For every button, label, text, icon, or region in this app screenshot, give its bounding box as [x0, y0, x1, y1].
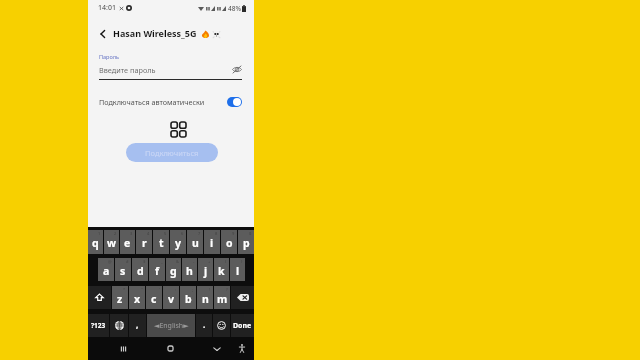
other: Emoji: [217, 321, 226, 330]
staticText: Подключиться: [145, 148, 199, 158]
button[interactable]: Show password: [231, 64, 242, 75]
button[interactable]: @: [98, 258, 114, 281]
staticText: k: [218, 264, 225, 278]
button[interactable]: !: [197, 286, 213, 309]
staticText: Hasan Wireless_5G: [113, 27, 197, 39]
staticText: 4: [147, 231, 150, 236]
staticText: q: [92, 236, 99, 250]
button[interactable]: ': [146, 286, 162, 309]
staticText: ": [141, 287, 143, 292]
button[interactable]: ): [230, 258, 245, 281]
staticText: a: [103, 264, 110, 278]
staticText: (: [225, 259, 227, 264]
staticText: 6: [181, 231, 184, 236]
button[interactable]: *: [112, 286, 128, 309]
staticText: Введите пароль: [99, 65, 156, 75]
staticText: ?: [226, 287, 228, 292]
button[interactable]: 0: [238, 230, 254, 254]
staticText: 0: [249, 231, 252, 236]
staticText: l: [236, 264, 240, 278]
staticText: c: [151, 292, 157, 306]
button[interactable]: _: [149, 258, 165, 281]
staticText: 3: [130, 231, 133, 236]
button[interactable]: Accessibility: [232, 337, 252, 360]
button[interactable]: Scan QR code: [169, 120, 187, 138]
staticText: @: [108, 259, 112, 264]
button[interactable]: :: [163, 286, 179, 309]
staticText: z: [117, 292, 123, 306]
button[interactable]: ;: [180, 286, 196, 309]
button[interactable]: ◄English►: [147, 314, 195, 337]
staticText: .: [203, 319, 206, 330]
staticText: g: [170, 264, 177, 278]
button[interactable]: (: [214, 258, 229, 281]
button[interactable]: Done: [231, 314, 254, 337]
button[interactable]: Recents: [112, 337, 134, 360]
staticText: v: [168, 292, 174, 306]
staticText: n: [202, 292, 209, 306]
button[interactable]: Backspace: [231, 286, 254, 309]
staticText: Подключаться автоматически: [99, 97, 205, 107]
button[interactable]: Emoji: [213, 314, 230, 337]
staticText: j: [204, 264, 208, 278]
staticText: t: [159, 236, 164, 250]
button[interactable]: 4: [136, 230, 152, 254]
button[interactable]: 5: [153, 230, 169, 254]
staticText: Done: [233, 321, 252, 331]
button[interactable]: 1: [88, 230, 103, 254]
staticText: e: [124, 236, 131, 250]
staticText: i: [210, 236, 214, 250]
staticText: u: [192, 236, 199, 250]
button[interactable]: Change language: [110, 314, 128, 337]
button[interactable]: #: [115, 258, 131, 281]
staticText: +: [208, 259, 211, 264]
staticText: 5: [164, 231, 167, 236]
button[interactable]: 6: [170, 230, 186, 254]
button[interactable]: Home: [159, 337, 181, 360]
other: Backspace: [237, 294, 249, 301]
other: Shift: [95, 293, 104, 302]
staticText: m: [217, 292, 228, 306]
staticText: o: [226, 236, 233, 250]
button[interactable]: 9: [221, 230, 237, 254]
staticText: 1: [98, 231, 101, 236]
staticText: !: [209, 287, 211, 292]
button[interactable]: &: [166, 258, 181, 281]
staticText: w: [107, 236, 116, 250]
button[interactable]: 3: [120, 230, 135, 254]
staticText: *: [123, 287, 126, 292]
button[interactable]: 7: [187, 230, 203, 254]
button[interactable]: ,: [129, 314, 146, 337]
staticText: 9: [232, 231, 235, 236]
staticText: b: [185, 292, 192, 306]
staticText: r: [142, 236, 147, 250]
staticText: y: [175, 236, 181, 250]
button[interactable]: -: [182, 258, 197, 281]
button[interactable]: 2: [104, 230, 119, 254]
staticText: 8: [215, 231, 218, 236]
staticText: h: [186, 264, 193, 278]
staticText: p: [243, 236, 250, 250]
button[interactable]: 8: [204, 230, 220, 254]
staticText: &: [176, 259, 179, 264]
button[interactable]: Подключиться: [126, 143, 218, 162]
button[interactable]: $: [132, 258, 148, 281]
staticText: #: [126, 259, 129, 264]
staticText: Пароль: [99, 53, 119, 60]
staticText: d: [137, 264, 144, 278]
button[interactable]: Back: [95, 26, 110, 41]
staticText: 48%: [228, 4, 241, 13]
staticText: f: [155, 264, 160, 278]
button[interactable]: Hide keyboard: [206, 337, 228, 360]
button[interactable]: ?: [214, 286, 230, 309]
button[interactable]: .: [196, 314, 212, 337]
button[interactable]: ": [129, 286, 145, 309]
staticText: ): [241, 259, 243, 264]
button[interactable]: ?123: [88, 314, 109, 337]
button[interactable]: Подключаться автоматически: [99, 97, 242, 107]
button[interactable]: +: [198, 258, 213, 281]
staticText: s: [120, 264, 126, 278]
button[interactable]: Shift: [88, 286, 111, 309]
